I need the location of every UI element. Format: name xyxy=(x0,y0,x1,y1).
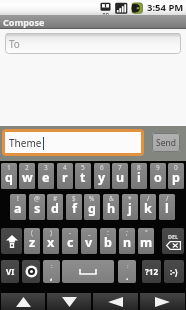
button[interactable]: " xyxy=(138,228,154,254)
staticText: / xyxy=(147,194,150,203)
staticText: p xyxy=(172,169,180,186)
button[interactable]: 4 xyxy=(57,163,73,189)
staticText: 7 xyxy=(118,163,122,172)
button[interactable]: - xyxy=(62,228,78,254)
staticText: s xyxy=(34,200,41,217)
button[interactable]: 6 xyxy=(94,163,110,189)
staticText: x xyxy=(47,234,55,251)
staticText: d xyxy=(51,200,59,217)
staticText: Compose xyxy=(3,16,45,28)
staticText: y xyxy=(98,169,106,186)
staticText: 3 xyxy=(44,163,48,172)
staticText: t xyxy=(80,169,86,186)
staticText: 4 xyxy=(63,163,67,172)
staticText: g xyxy=(88,200,96,217)
button[interactable]: / xyxy=(159,194,175,220)
staticText: i xyxy=(137,169,141,186)
button[interactable]: Voice input xyxy=(22,260,40,283)
staticText: v xyxy=(85,234,93,251)
staticText: @ xyxy=(34,194,40,203)
button[interactable]: Left xyxy=(93,293,138,310)
staticText: Send xyxy=(156,137,176,149)
button[interactable]: ; xyxy=(119,228,135,254)
button[interactable]: 7 xyxy=(112,163,128,189)
button[interactable]: @ xyxy=(29,194,45,220)
staticText: u xyxy=(116,169,125,186)
button[interactable]: 3 xyxy=(38,163,54,189)
button[interactable]: ! xyxy=(10,194,26,220)
button[interactable]: 0 xyxy=(168,163,184,189)
button[interactable]: To xyxy=(5,33,181,54)
staticText: 6 xyxy=(100,163,104,172)
button[interactable]: _ xyxy=(81,228,97,254)
button[interactable]: & xyxy=(103,194,119,220)
staticText: : xyxy=(51,262,53,270)
staticText: : xyxy=(107,228,109,237)
staticText: . xyxy=(126,270,129,282)
staticText: ?12 xyxy=(145,266,158,277)
button[interactable]: / xyxy=(140,194,156,220)
staticText: f xyxy=(72,200,77,217)
staticText: VI xyxy=(6,266,15,277)
button[interactable]: Down xyxy=(47,293,91,310)
button[interactable]: 5 xyxy=(75,163,91,189)
staticText: 0 xyxy=(174,163,178,172)
staticText: & xyxy=(109,194,114,203)
staticText: ) xyxy=(50,228,52,237)
staticText: * xyxy=(128,194,132,203)
button[interactable]: 2 xyxy=(19,163,35,189)
button[interactable]: : xyxy=(118,260,136,283)
button[interactable]: ( xyxy=(24,228,40,254)
staticText: $ xyxy=(72,194,76,203)
staticText: w xyxy=(22,169,33,186)
staticText: a xyxy=(14,200,22,217)
button[interactable]: Right xyxy=(140,293,185,310)
button[interactable]: : xyxy=(100,228,116,254)
button[interactable]: # xyxy=(47,194,63,220)
button[interactable]: Send xyxy=(152,133,180,152)
button[interactable]: Up xyxy=(1,293,45,310)
staticText: h xyxy=(107,200,116,217)
staticText: ! xyxy=(17,194,19,203)
staticText: e xyxy=(42,169,50,186)
button[interactable]: Language xyxy=(1,260,19,283)
staticText: , xyxy=(50,270,53,282)
staticText: c xyxy=(67,234,74,251)
staticText: ( xyxy=(31,228,33,237)
staticText: 5 xyxy=(81,163,85,172)
staticText: z xyxy=(29,234,36,251)
staticText: n xyxy=(123,234,132,251)
staticText: 1 xyxy=(7,163,11,172)
staticText: 3:54 PM xyxy=(147,1,184,14)
staticText: DEL xyxy=(168,233,179,240)
staticText: 2 xyxy=(25,163,29,172)
button[interactable]: ) xyxy=(43,228,59,254)
staticText: q xyxy=(5,169,13,186)
staticText: Theme xyxy=(9,136,42,150)
staticText: / xyxy=(166,194,169,203)
button[interactable]: % xyxy=(84,194,100,220)
button[interactable]: Shift xyxy=(1,228,22,254)
button[interactable]: Symbols xyxy=(142,260,161,283)
staticText: % xyxy=(89,194,95,203)
button[interactable]: 8 xyxy=(131,163,147,189)
button[interactable]: Delete xyxy=(162,228,184,254)
button[interactable]: * xyxy=(122,194,138,220)
staticText: # xyxy=(53,194,58,203)
staticText: ; xyxy=(126,228,128,237)
staticText: j xyxy=(128,200,132,217)
button[interactable]: : xyxy=(43,260,60,283)
button[interactable]: Emoji xyxy=(164,260,184,283)
staticText: m xyxy=(140,234,153,251)
button[interactable]: Theme xyxy=(5,132,141,153)
button[interactable]: 9 xyxy=(150,163,166,189)
staticText: _ xyxy=(88,228,91,237)
staticText: l xyxy=(165,200,169,217)
button[interactable]: $ xyxy=(66,194,82,220)
staticText: o xyxy=(154,169,162,186)
staticText: : xyxy=(127,262,129,270)
staticText: - xyxy=(69,228,72,237)
staticText: r xyxy=(62,169,68,186)
button[interactable]: Space xyxy=(62,260,114,283)
button[interactable]: 1 xyxy=(1,163,17,189)
